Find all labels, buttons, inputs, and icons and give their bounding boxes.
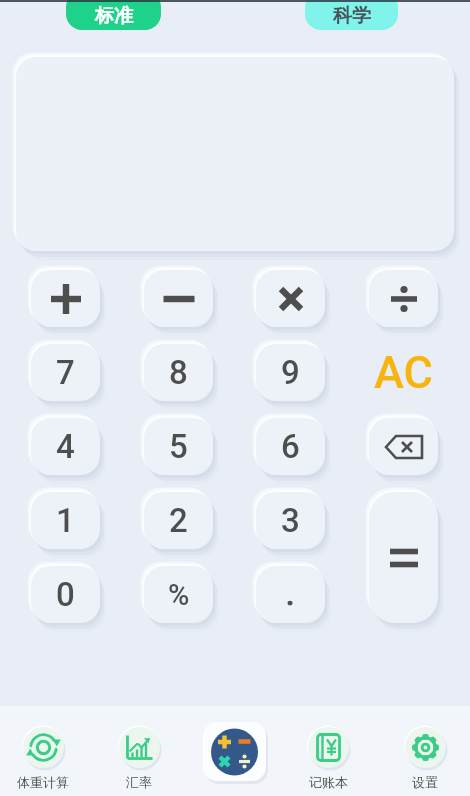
button[interactable]: %	[144, 566, 213, 623]
button[interactable]	[369, 492, 438, 623]
staticText: 3	[281, 501, 300, 540]
button[interactable]	[369, 270, 438, 327]
staticText: 0	[56, 575, 75, 614]
staticText: 标准	[95, 4, 133, 28]
button[interactable]: .	[256, 566, 325, 623]
staticText: 2	[169, 501, 188, 540]
button[interactable]: AC	[369, 344, 438, 401]
button[interactable]	[31, 270, 100, 327]
staticText: 设置	[412, 774, 438, 790]
staticText: 体重计算	[17, 774, 69, 790]
button[interactable]: 2	[144, 492, 213, 549]
button[interactable]	[256, 270, 325, 327]
button[interactable]: 设置	[380, 718, 470, 794]
button[interactable]	[144, 270, 213, 327]
button[interactable]: 8	[144, 344, 213, 401]
staticText: 汇率	[126, 774, 152, 790]
staticText: 8	[169, 353, 188, 392]
button[interactable]: 7	[31, 344, 100, 401]
button[interactable]: 9	[256, 344, 325, 401]
button[interactable]: 3	[256, 492, 325, 549]
staticText: 7	[56, 353, 75, 392]
staticText: 6	[281, 427, 300, 466]
staticText: 5	[169, 427, 188, 466]
button[interactable]: 记账本	[283, 718, 373, 794]
button[interactable]: 6	[256, 418, 325, 475]
button[interactable]: 1	[31, 492, 100, 549]
staticText: 9	[281, 353, 300, 392]
button[interactable]: 科学	[305, 0, 398, 30]
staticText: 4	[56, 427, 75, 466]
button[interactable]: 汇率	[94, 718, 184, 794]
button[interactable]: 标准	[66, 0, 161, 30]
button[interactable]	[369, 418, 438, 475]
button[interactable]: 5	[144, 418, 213, 475]
button[interactable]: 4	[31, 418, 100, 475]
button[interactable]: 体重计算	[0, 718, 88, 794]
staticText: AC	[374, 346, 433, 399]
staticText: %	[168, 578, 190, 612]
button[interactable]: 0	[31, 566, 100, 623]
staticText: 1	[56, 501, 75, 540]
staticText: .	[286, 577, 295, 612]
button[interactable]	[203, 722, 266, 781]
staticText: 记账本	[309, 774, 348, 790]
staticText: 科学	[333, 4, 371, 28]
